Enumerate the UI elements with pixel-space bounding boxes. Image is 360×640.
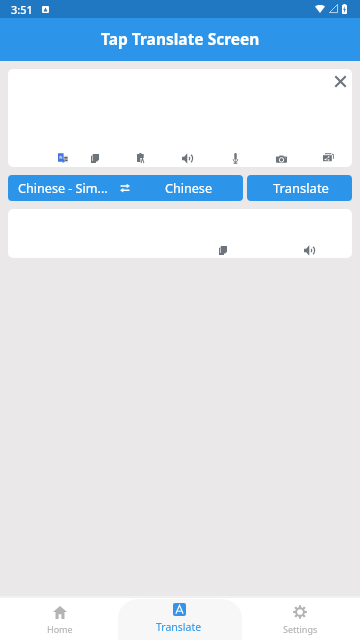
button[interactable]: Settings [260,598,340,640]
staticText: Settings [283,623,318,635]
button[interactable]: Copy [86,149,104,167]
button[interactable]: Camera [272,150,290,167]
staticText: Translate [273,179,329,197]
button[interactable]: Copy translation [214,241,232,258]
button[interactable]: Home [20,598,100,640]
staticText: Home [47,623,73,635]
button[interactable]: Listen [178,149,196,167]
button[interactable]: Paste [132,149,150,167]
button[interactable]: Chinese - Sim... [8,175,243,201]
button[interactable]: Translate [139,598,219,640]
button[interactable]: Share screen [319,149,337,167]
button[interactable]: Translate selection [54,149,72,167]
staticText: Translate [156,620,202,634]
staticText: 3:51 [11,2,33,17]
button[interactable]: Listen to translation [300,241,318,258]
staticText: Chinese [132,180,243,197]
staticText: Tap Translate Screen [101,28,260,49]
button[interactable]: Voice input [226,149,244,167]
button[interactable]: Close [328,69,352,93]
staticText: Chinese - Sim... [18,180,116,197]
button[interactable]: Translate [247,175,352,201]
